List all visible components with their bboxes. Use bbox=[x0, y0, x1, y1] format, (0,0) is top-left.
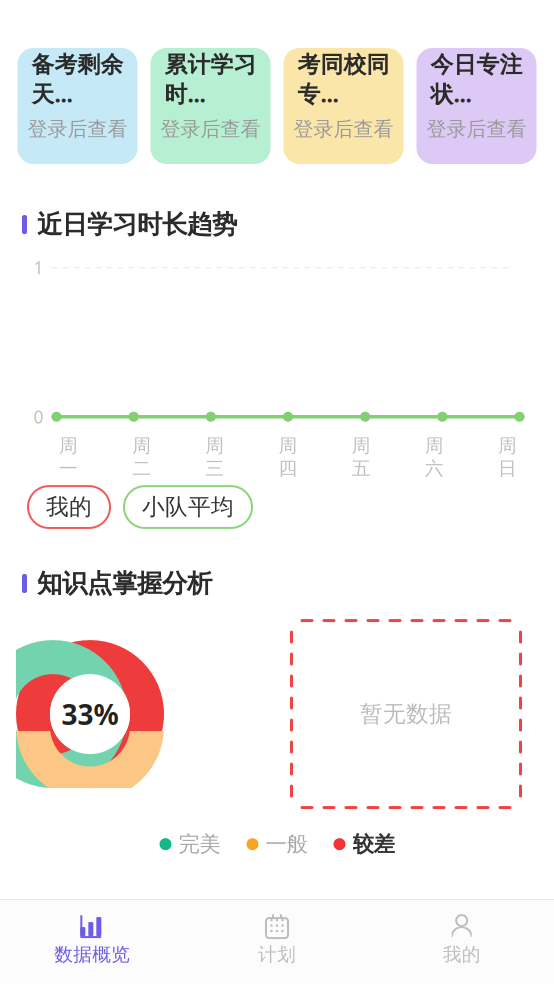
staticText: 1 bbox=[33, 256, 43, 279]
staticText: 知识点掌握分析 bbox=[37, 568, 212, 599]
button[interactable]: 累计学习时... bbox=[150, 48, 270, 164]
button[interactable]: 计划 bbox=[185, 906, 369, 974]
staticText: 周日 bbox=[498, 434, 517, 480]
staticText: 今日专注状... bbox=[430, 51, 522, 109]
staticText: 一般 bbox=[265, 831, 307, 857]
staticText: 登录后查看 bbox=[293, 117, 393, 141]
staticText: 周三 bbox=[205, 434, 224, 480]
staticText: 周二 bbox=[132, 434, 151, 480]
staticText: 周四 bbox=[278, 434, 297, 480]
button[interactable]: 我的 bbox=[28, 486, 110, 528]
staticText: 我的 bbox=[443, 943, 481, 966]
staticText: 我的 bbox=[46, 493, 92, 521]
staticText: 备考剩余天... bbox=[31, 51, 123, 109]
button[interactable]: 数据概览 bbox=[0, 906, 185, 974]
staticText: 小队平均 bbox=[142, 493, 234, 521]
staticText: 累计学习时... bbox=[164, 51, 256, 109]
staticText: 登录后查看 bbox=[160, 117, 260, 141]
staticText: 33% bbox=[61, 695, 118, 733]
staticText: 较差 bbox=[352, 831, 394, 857]
staticText: 数据概览 bbox=[54, 943, 130, 966]
staticText: 计划 bbox=[258, 943, 296, 966]
staticText: 登录后查看 bbox=[426, 117, 526, 141]
staticText: 周五 bbox=[352, 434, 371, 480]
button[interactable]: 今日专注状... bbox=[416, 48, 536, 164]
staticText: 暂无数据 bbox=[360, 700, 452, 728]
staticText: 0 bbox=[33, 405, 43, 428]
button[interactable]: 备考剩余天... bbox=[17, 48, 137, 164]
staticText: 周一 bbox=[59, 434, 78, 480]
button[interactable]: 我的 bbox=[369, 906, 554, 974]
button[interactable]: 考同校同专... bbox=[283, 48, 403, 164]
button[interactable]: 小队平均 bbox=[124, 486, 252, 528]
staticText: 登录后查看 bbox=[27, 117, 127, 141]
staticText: 考同校同专... bbox=[297, 51, 389, 109]
staticText: 周六 bbox=[425, 434, 444, 480]
staticText: 完美 bbox=[178, 831, 220, 857]
staticText: 近日学习时长趋势 bbox=[37, 209, 237, 240]
